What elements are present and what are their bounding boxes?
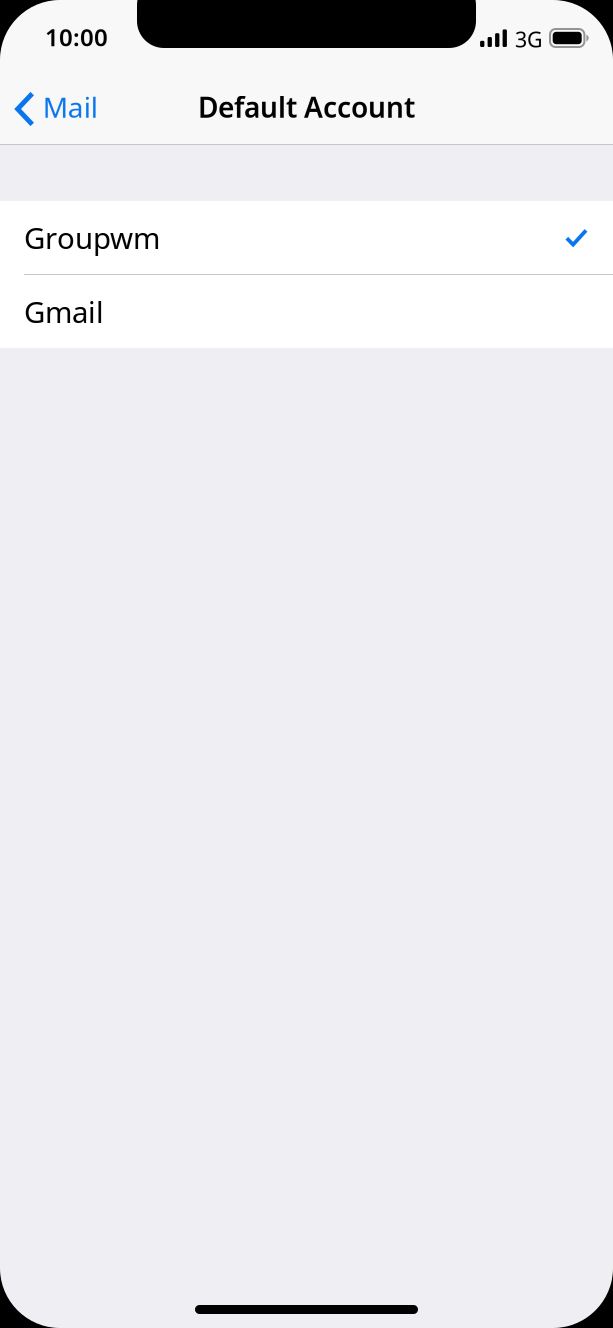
staticText: 3G bbox=[515, 25, 543, 53]
staticText: Mail bbox=[43, 88, 98, 126]
staticText: 10:00 bbox=[45, 21, 108, 53]
button[interactable]: Groupwm bbox=[0, 201, 613, 274]
button[interactable]: Gmail bbox=[0, 275, 613, 348]
staticText: Gmail bbox=[24, 292, 104, 331]
staticText: Groupwm bbox=[24, 218, 160, 257]
button[interactable]: Back to Mail bbox=[0, 76, 112, 144]
staticText: Default Account bbox=[198, 88, 415, 126]
